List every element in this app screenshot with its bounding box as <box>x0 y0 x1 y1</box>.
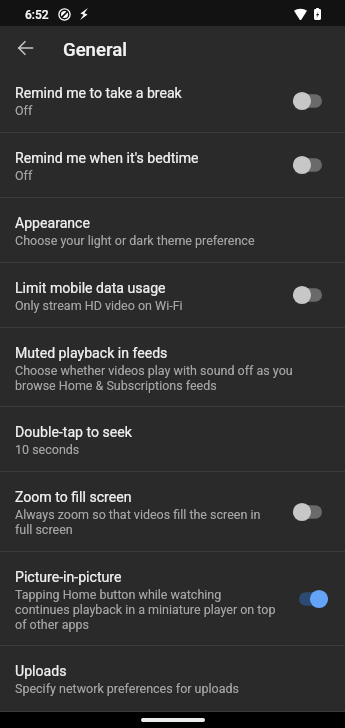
staticText: General <box>63 39 127 61</box>
staticText: Choose your light or dark theme preferen… <box>15 234 255 249</box>
button[interactable]: Limit mobile data usage <box>0 263 345 327</box>
staticText: Tapping Home button while watching conti… <box>15 588 276 633</box>
staticText: Picture-in-picture <box>15 569 122 586</box>
staticText: Only stream HD video on Wi-Fi <box>15 299 183 314</box>
button[interactable]: Appearance <box>0 198 345 262</box>
staticText: 6:52 <box>25 8 49 22</box>
staticText: Muted playback in feeds <box>15 345 168 362</box>
button[interactable]: Double-tap to seek <box>0 407 345 471</box>
button[interactable]: Muted playback in feeds <box>0 328 345 406</box>
staticText: Uploads <box>15 663 67 680</box>
button[interactable]: Zoom to fill screen <box>0 472 345 551</box>
staticText: Remind me when it's bedtime <box>15 150 199 167</box>
staticText: Double-tap to seek <box>15 424 132 441</box>
button[interactable]: Uploads <box>0 646 345 708</box>
staticText: Limit mobile data usage <box>15 280 166 297</box>
button[interactable]: Picture-in-picture <box>0 552 345 645</box>
button[interactable]: Navigate up <box>7 30 43 66</box>
staticText: Choose whether videos play with sound of… <box>15 364 293 394</box>
staticText: 10 seconds <box>15 443 80 458</box>
staticText: Zoom to fill screen <box>15 489 132 506</box>
button[interactable]: Remind me to take a break <box>0 70 345 132</box>
staticText: Remind me to take a break <box>15 85 182 102</box>
staticText: Specify network preferences for uploads <box>15 682 239 697</box>
button[interactable]: Remind me when it's bedtime <box>0 133 345 197</box>
staticText: Off <box>15 169 33 184</box>
staticText: Always zoom so that videos fill the scre… <box>15 508 261 538</box>
staticText: Off <box>15 104 33 119</box>
staticText: Appearance <box>15 215 90 232</box>
